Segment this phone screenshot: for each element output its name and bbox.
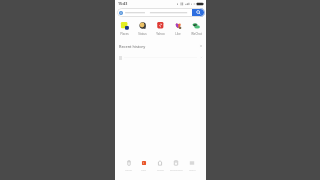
button[interactable]: Home — [121, 160, 136, 171]
button[interactable]: Tabs — [136, 160, 152, 171]
button[interactable]: Like — [169, 21, 187, 36]
staticText: Like — [175, 32, 181, 36]
button[interactable]: Yahoo — [151, 21, 169, 36]
staticText: Shield — [157, 168, 164, 171]
button[interactable]: Menu — [184, 160, 200, 171]
button[interactable]: Search — [192, 8, 205, 17]
button[interactable]: Clear history — [199, 44, 203, 48]
staticText: Bookmarks — [170, 168, 183, 171]
staticText: 15:43 — [118, 1, 128, 6]
button[interactable]: Shield — [152, 160, 168, 171]
staticText: Home — [125, 168, 132, 171]
button[interactable]: Status — [133, 21, 151, 36]
staticText: Recent history — [119, 44, 146, 49]
staticText: Status — [138, 32, 147, 36]
staticText: WeChat — [191, 32, 202, 36]
staticText: Tabs — [141, 168, 147, 171]
staticText: Menu — [189, 168, 196, 171]
staticText: Yahoo — [156, 32, 165, 36]
button[interactable]: Search — [117, 8, 205, 17]
button[interactable]: Places — [116, 21, 133, 36]
staticText: Places — [120, 32, 129, 36]
button[interactable]: Bookmarks — [168, 160, 184, 171]
button[interactable]: WeChat — [187, 21, 205, 36]
